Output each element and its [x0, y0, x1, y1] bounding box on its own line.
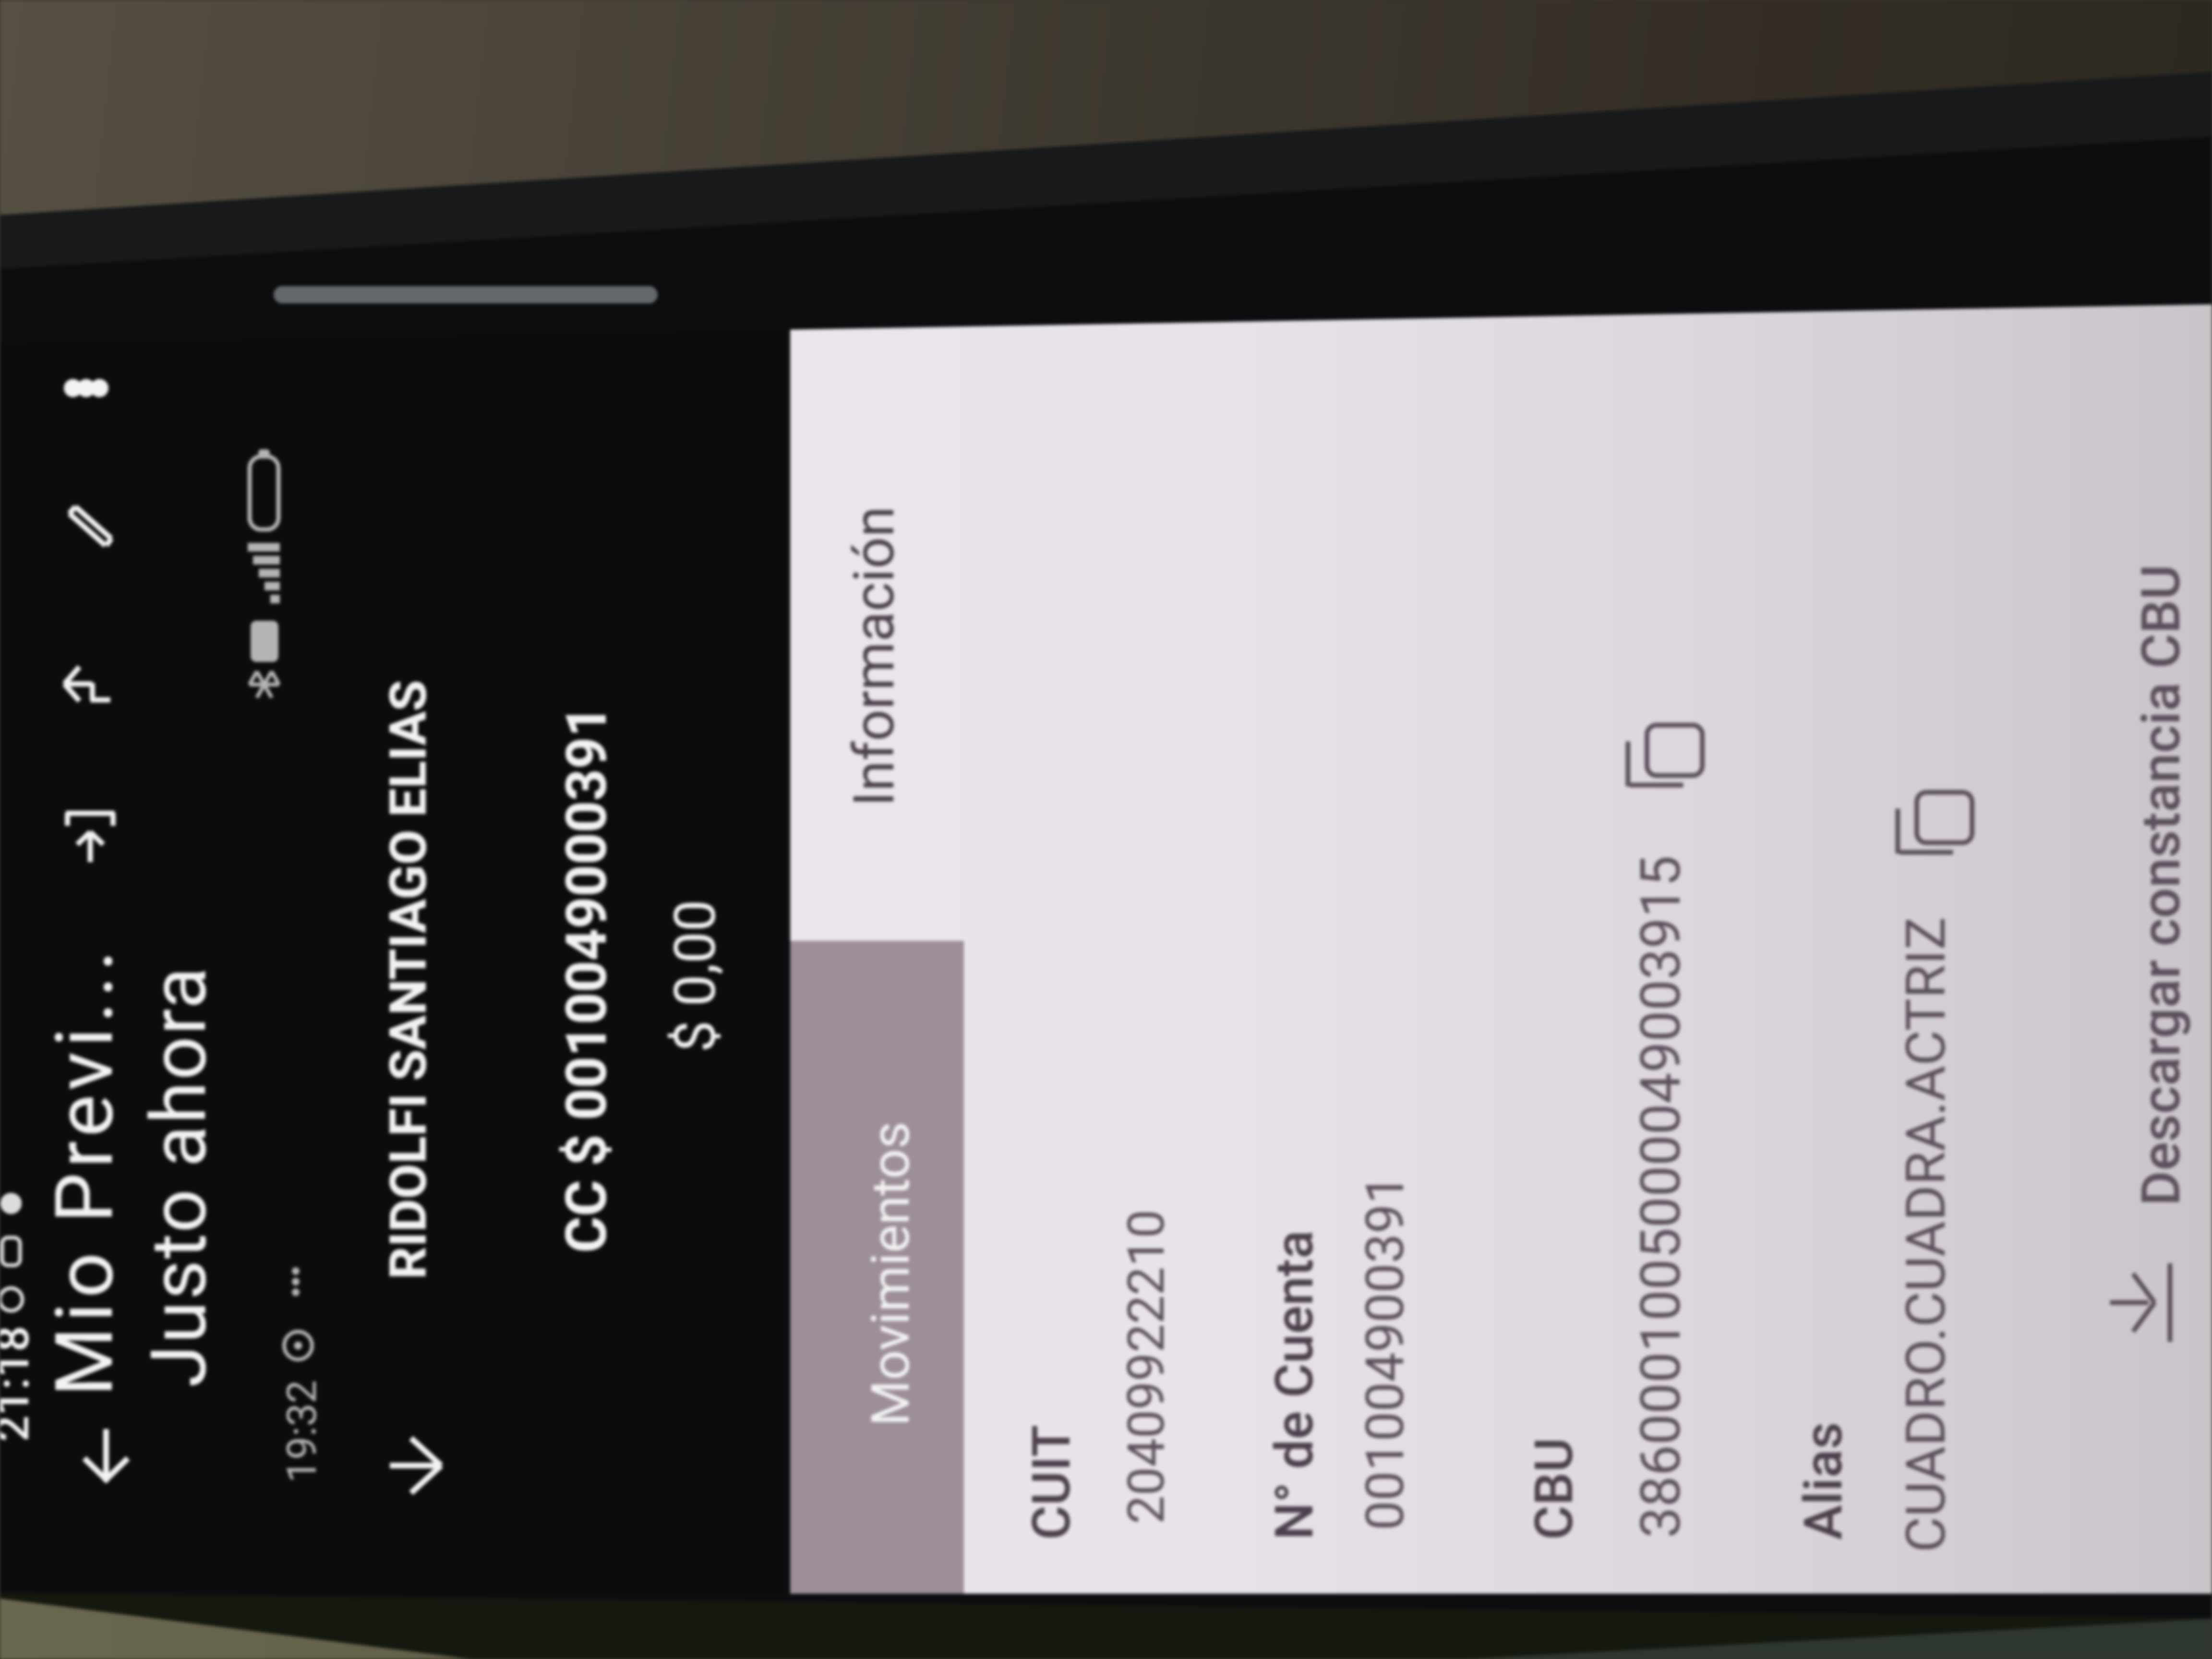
staticText: Alias [1792, 1422, 1854, 1540]
staticText: CUIT [1021, 1425, 1082, 1540]
staticText: CBU [1523, 1437, 1585, 1540]
staticText: 20409922210 [1117, 1209, 1176, 1524]
staticText: 3860001005000049003915 [1628, 855, 1693, 1538]
staticText: Información [842, 506, 907, 806]
button[interactable]: Movimientos [790, 941, 964, 1594]
button[interactable]: Descargar constancia CBU [2105, 444, 2212, 1356]
button[interactable]: Edit [44, 484, 131, 571]
staticText: Descargar constancia CBU [2129, 565, 2192, 1206]
button[interactable]: Copy [1609, 709, 1719, 801]
staticText: $ 0,00 [662, 900, 729, 1052]
staticText: 21:18 [0, 1325, 39, 1442]
staticText: RIDOLFI SANTIAGO ELIAS [379, 680, 438, 1279]
staticText: CC $ 0010049000391 [554, 705, 619, 1253]
staticText: 19:32 [277, 1380, 326, 1483]
button[interactable]: Share [44, 643, 131, 729]
button[interactable]: Copy [1879, 777, 1989, 868]
button[interactable]: Back [60, 1411, 152, 1502]
staticText: Movimientos [860, 1121, 922, 1426]
staticText: N° de Cuenta [1263, 1230, 1325, 1540]
button[interactable]: Collapse account [379, 1430, 451, 1502]
staticText: 001004900391 [1354, 1174, 1416, 1530]
staticText: Justo ahora [134, 965, 224, 1387]
button[interactable]: More options [43, 345, 129, 432]
staticText: CUADRO.CUADRA.ACTRIZ [1894, 917, 1958, 1552]
button[interactable]: Open with [47, 794, 133, 880]
button[interactable]: Información [790, 298, 964, 941]
staticText: Mio Previ... [38, 945, 132, 1396]
